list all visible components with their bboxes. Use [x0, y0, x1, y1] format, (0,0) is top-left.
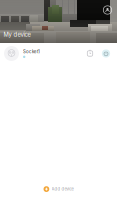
staticText: My device	[3, 31, 30, 38]
staticText: Socket1	[23, 49, 40, 54]
button[interactable]: Power	[99, 47, 112, 60]
button[interactable]: Socket1	[0, 43, 117, 64]
button[interactable]: Profile	[101, 3, 114, 16]
button[interactable]: Timer	[83, 47, 96, 60]
staticText: Add device	[51, 187, 73, 192]
button[interactable]: Add device	[39, 183, 77, 195]
